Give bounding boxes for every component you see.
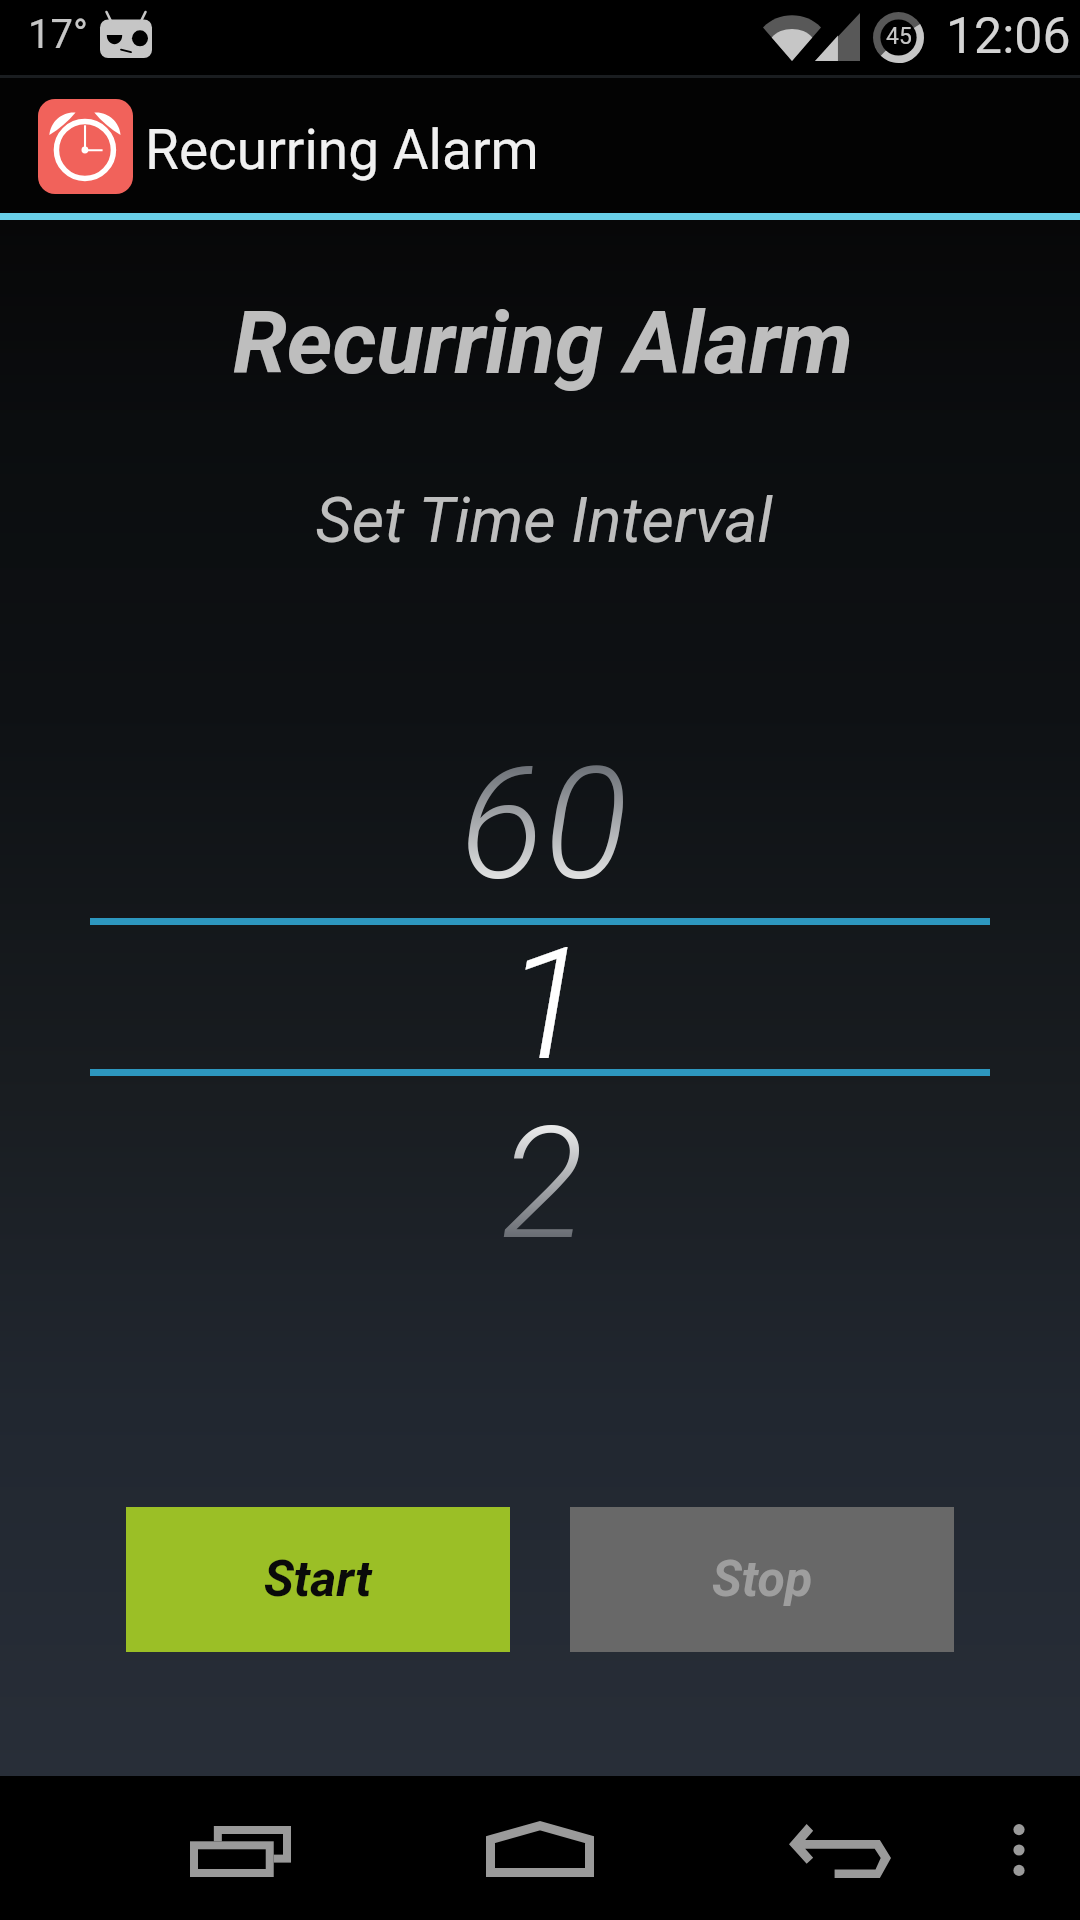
button[interactable]: More options <box>964 1778 1074 1920</box>
button[interactable]: Recent apps <box>140 1779 340 1920</box>
staticText: Recurring Alarm <box>145 118 539 182</box>
staticText: Set Time Interval <box>4 484 1080 558</box>
button[interactable]: Back <box>740 1779 940 1920</box>
button[interactable]: Start <box>126 1507 510 1652</box>
staticText: Start <box>264 1550 372 1609</box>
staticText: 2 <box>3 1092 1080 1275</box>
staticText: 17° <box>28 11 88 58</box>
staticText: 45 <box>886 23 912 50</box>
button[interactable]: Stop <box>570 1507 954 1652</box>
staticText: 12:06 <box>946 7 1071 66</box>
button[interactable]: Home <box>440 1776 640 1920</box>
staticText: 1 <box>7 913 1080 1096</box>
staticText: Recurring Alarm <box>3 292 1080 394</box>
staticText: 60 <box>4 732 1080 915</box>
staticText: Stop <box>712 1550 813 1609</box>
